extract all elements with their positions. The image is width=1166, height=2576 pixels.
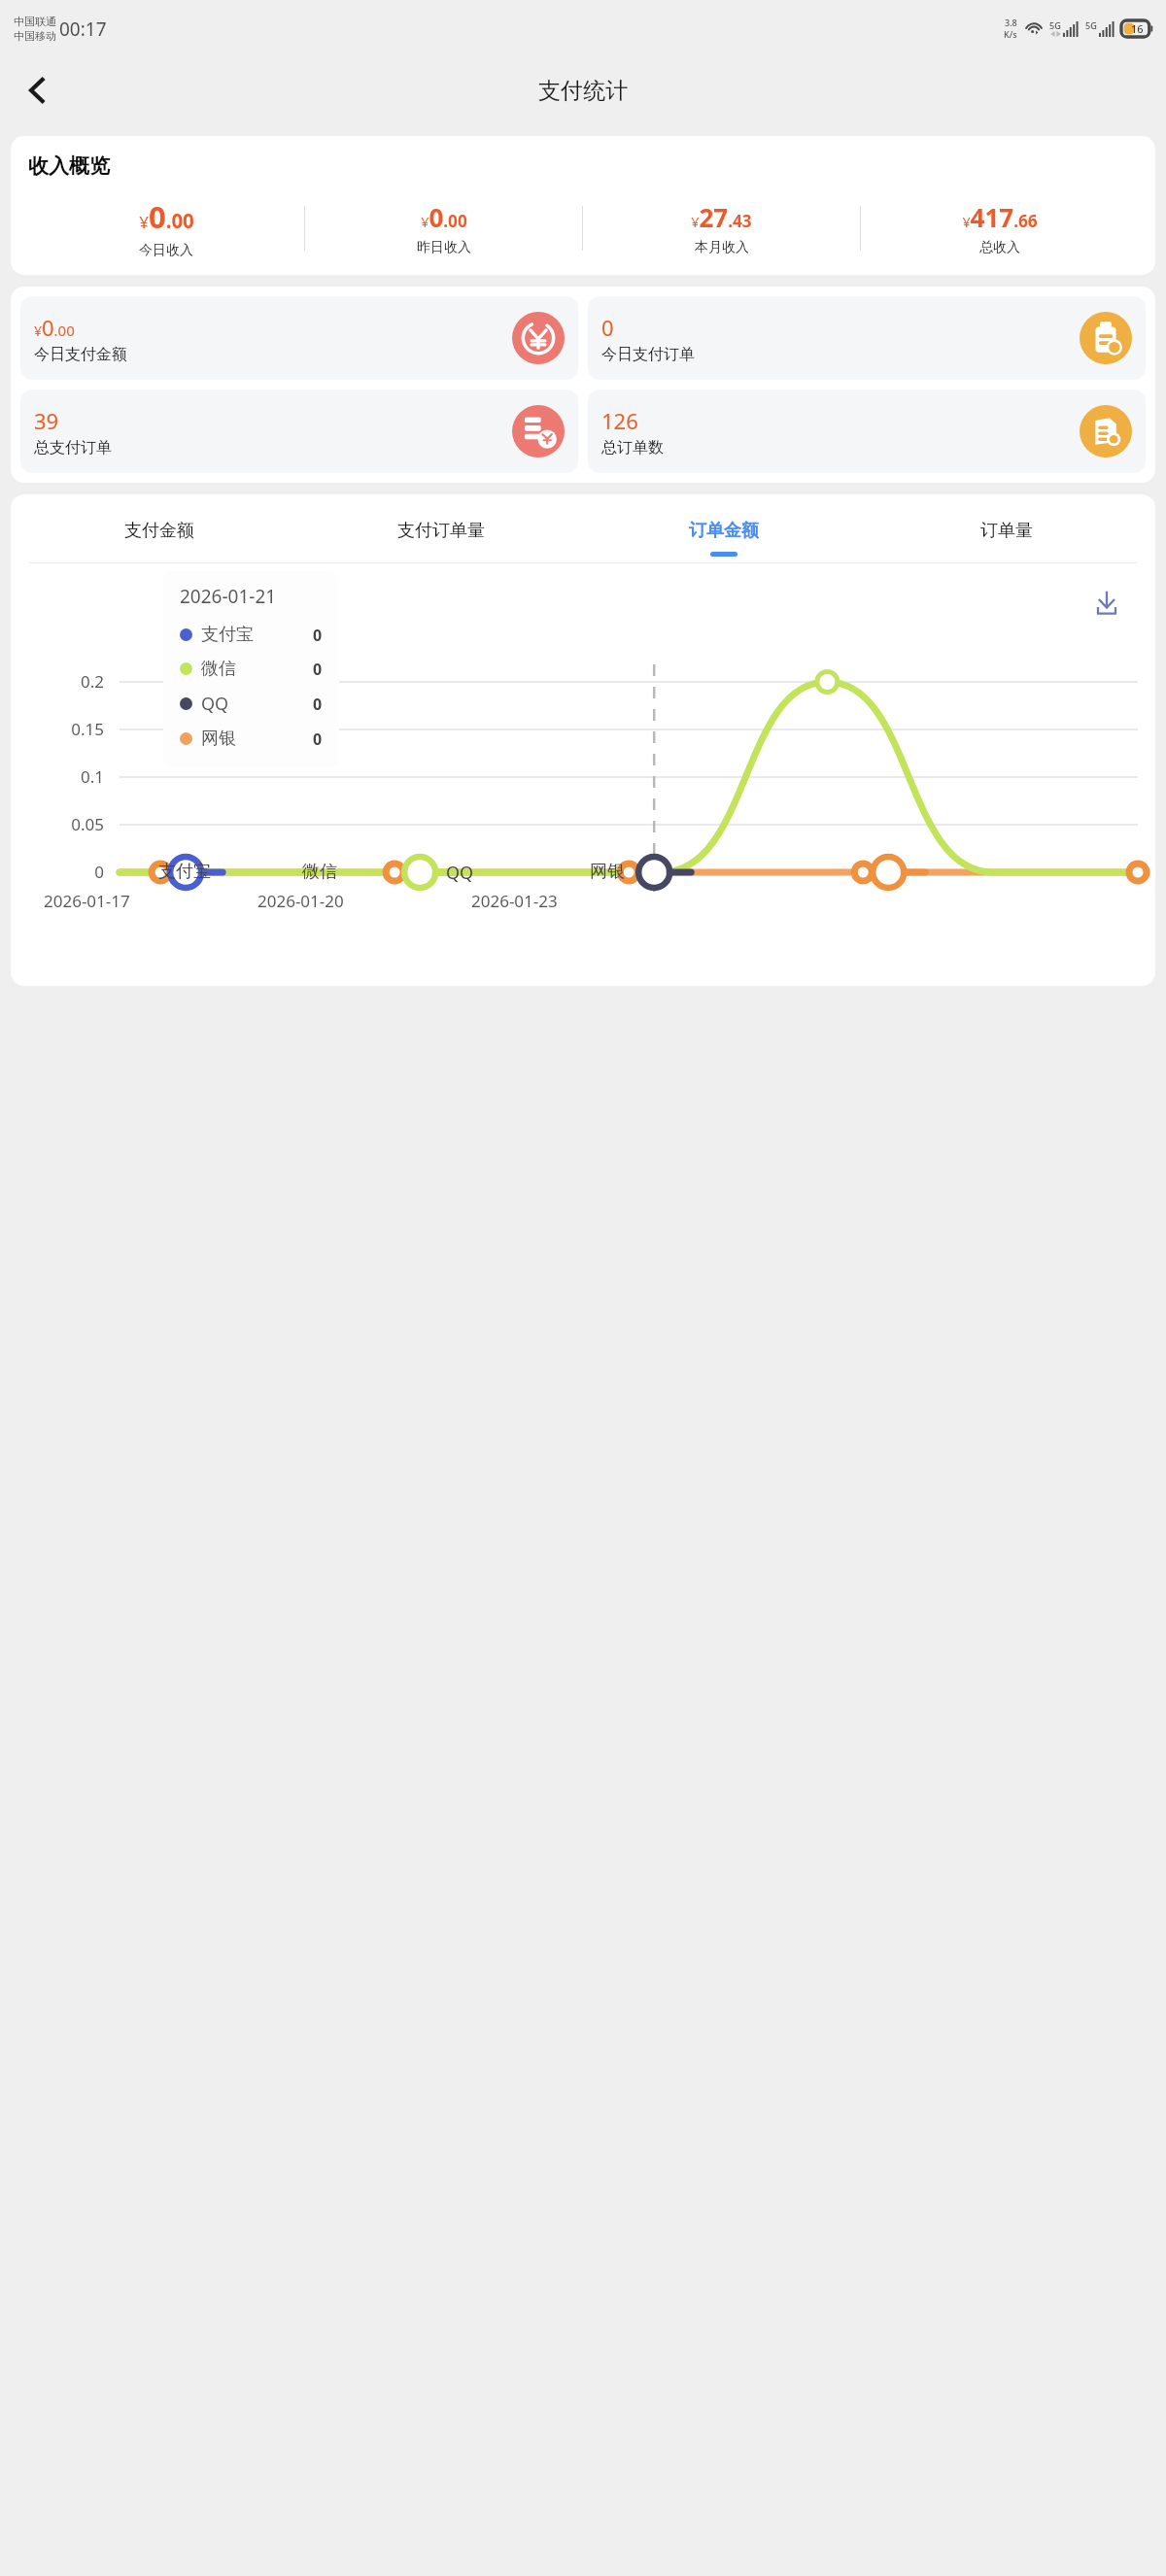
staticText: 微信 (302, 861, 337, 883)
staticText: 5G (1049, 19, 1061, 31)
staticText: 0.2 (18, 670, 104, 693)
staticText: 订单金额 (689, 520, 759, 542)
staticText: K/s (1004, 28, 1017, 40)
staticText: 支付宝 (201, 624, 313, 646)
staticText: ¥417.66 (962, 200, 1038, 234)
staticText: 0.15 (18, 718, 104, 740)
staticText: ¥0.00 (139, 196, 194, 237)
staticText: 昨日收入 (417, 239, 471, 256)
staticText: 今日支付金额 (34, 345, 127, 364)
staticText: 总收入 (979, 239, 1020, 256)
button[interactable]: 39 (20, 390, 578, 473)
button[interactable]: 支付订单量 (300, 514, 582, 562)
staticText: 2026-01-17 (44, 890, 130, 912)
staticText: ¥27.43 (691, 200, 752, 234)
staticText: 2026-01-23 (471, 890, 558, 912)
staticText: 今日支付订单 (601, 345, 695, 364)
staticText: 支付订单量 (397, 520, 485, 542)
staticText: 0 (313, 659, 323, 680)
button[interactable]: 126 (588, 390, 1146, 473)
button[interactable]: 0 (588, 296, 1146, 380)
staticText: ¥0.00 (34, 313, 75, 342)
staticText: 支付宝 (158, 861, 211, 883)
button[interactable]: 订单金额 (582, 514, 865, 562)
staticText: 今日收入 (139, 242, 193, 259)
button[interactable]: 支付金额 (18, 514, 300, 562)
button[interactable]: Download (1083, 581, 1130, 627)
staticText: 3.8 (1005, 17, 1017, 28)
staticText: 0.05 (18, 813, 104, 835)
staticText: 总订单数 (601, 438, 664, 458)
staticText: 0 (313, 729, 323, 750)
staticText: 网银 (590, 861, 625, 883)
staticText: 0.1 (18, 765, 104, 788)
staticText: 支付统计 (538, 77, 628, 105)
staticText: 0 (313, 625, 323, 646)
staticText: QQ (201, 692, 313, 716)
staticText: 支付金额 (124, 520, 194, 542)
staticText: 本月收入 (695, 239, 749, 256)
button[interactable]: ¥0.00 (20, 296, 578, 380)
staticText: 中国联通 (14, 15, 56, 28)
staticText: 0 (601, 313, 614, 342)
staticText: 0 (313, 694, 323, 715)
button[interactable]: 订单量 (865, 514, 1148, 562)
staticText: 微信 (201, 658, 313, 680)
staticText: 总支付订单 (34, 438, 112, 458)
staticText: 126 (601, 406, 638, 435)
staticText: 5G (1085, 19, 1097, 31)
staticText: 00:17 (59, 17, 107, 42)
staticText: 0 (18, 861, 104, 883)
staticText: 2026-01-21 (180, 584, 277, 609)
button[interactable]: Back (10, 63, 64, 118)
staticText: 39 (34, 406, 59, 435)
staticText: QQ (446, 861, 474, 885)
staticText: 网银 (201, 728, 313, 750)
staticText: 2026-01-20 (257, 890, 344, 912)
staticText: 收入概览 (28, 153, 110, 179)
staticText: ¥0.00 (421, 200, 467, 234)
staticText: 16 (1131, 21, 1144, 36)
staticText: 订单量 (980, 520, 1033, 542)
staticText: 中国移动 (14, 29, 56, 43)
